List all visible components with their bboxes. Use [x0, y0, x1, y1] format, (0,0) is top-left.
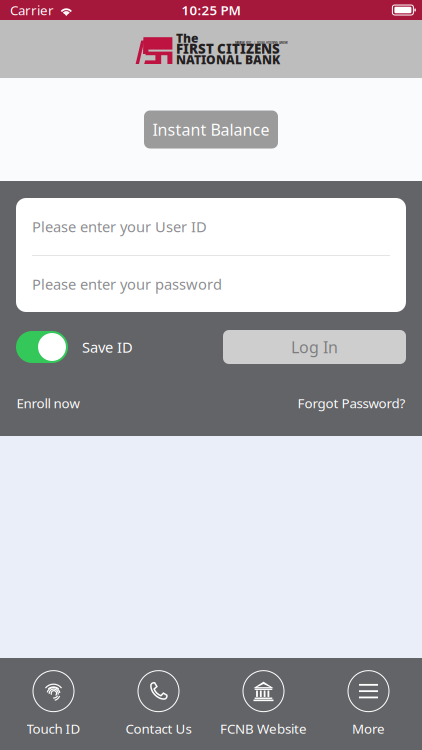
- staticText: Please enter your User ID: [32, 217, 207, 236]
- button[interactable]: Please enter your password: [16, 256, 406, 312]
- button[interactable]: More: [316, 658, 421, 750]
- staticText: Enroll now: [16, 394, 79, 412]
- staticText: FCNB Website: [220, 720, 307, 737]
- staticText: Touch ID: [26, 720, 80, 737]
- staticText: FIRST CITIZENS: [176, 40, 280, 57]
- staticText: Carrier: [10, 1, 54, 19]
- staticText: The: [176, 30, 198, 46]
- button[interactable]: Instant Balance: [144, 110, 278, 148]
- button[interactable]: Please enter your User ID: [16, 198, 406, 255]
- button[interactable]: FCNB Website: [211, 658, 316, 750]
- staticText: Instant Balance: [152, 119, 269, 140]
- staticText: 10:25 PM: [181, 1, 240, 19]
- staticText: Please enter your password: [32, 274, 222, 294]
- button[interactable]: Contact Us: [106, 658, 211, 750]
- staticText: Forgot Password?: [297, 394, 405, 412]
- button[interactable]: Forgot Password?: [297, 392, 405, 414]
- staticText: Contact Us: [125, 720, 191, 737]
- button[interactable]: Log In: [223, 330, 406, 364]
- staticText: MEMBER FDIC | EQUAL HOUSING LENDER: [235, 41, 288, 44]
- staticText: Log In: [291, 336, 338, 358]
- staticText: NATIONAL BANK: [176, 51, 280, 67]
- staticText: More: [352, 720, 385, 737]
- staticText: Save ID: [82, 337, 133, 357]
- button[interactable]: Save ID: [16, 330, 133, 364]
- button[interactable]: Touch ID: [1, 658, 106, 750]
- button[interactable]: Enroll now: [16, 392, 79, 414]
